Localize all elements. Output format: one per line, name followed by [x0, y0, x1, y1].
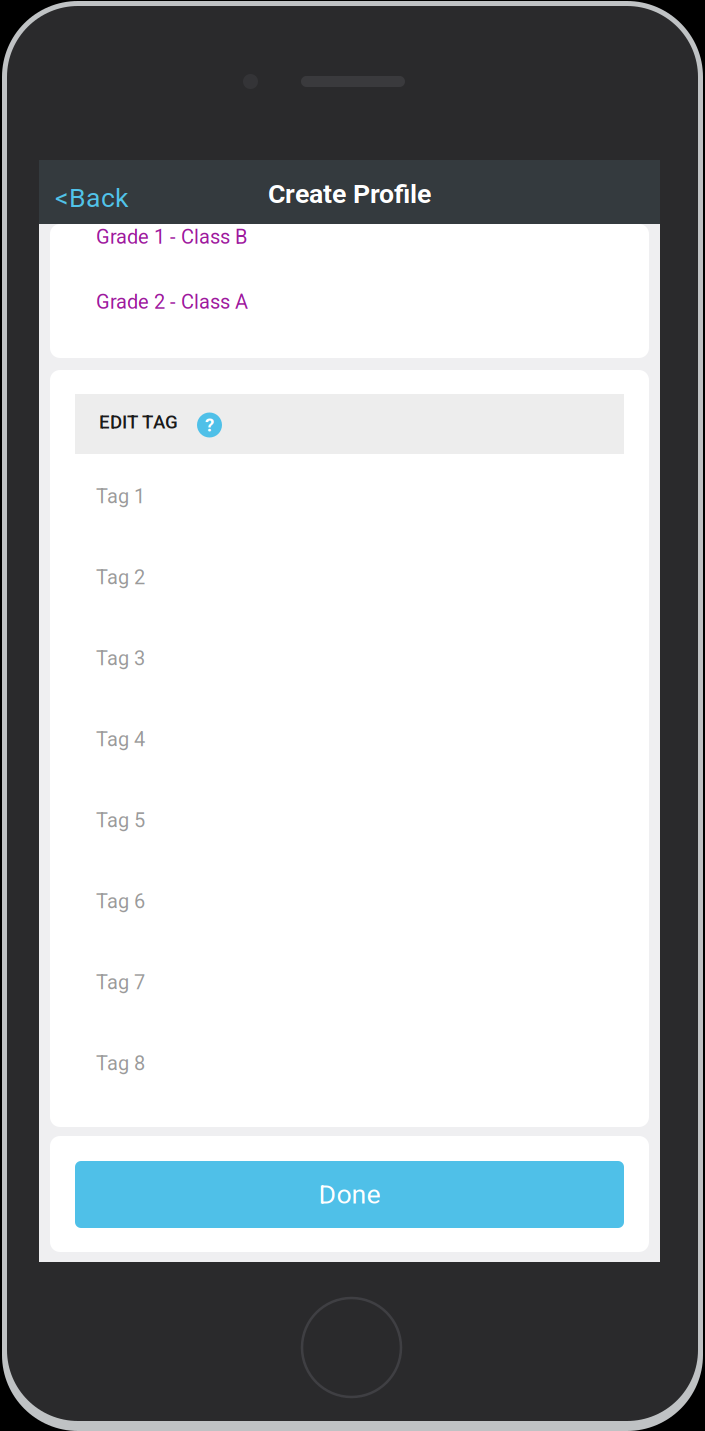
button[interactable]: Tag 4: [50, 699, 649, 780]
button[interactable]: Grade 1 - Class B: [50, 225, 649, 249]
staticText: Grade 1 - Class B: [96, 225, 247, 249]
staticText: EDIT TAG: [99, 411, 178, 433]
staticText: Done: [318, 1179, 380, 1210]
button[interactable]: Tag 7: [50, 942, 649, 1023]
button[interactable]: Tag 8: [50, 1023, 649, 1104]
button[interactable]: <Back: [39, 178, 189, 218]
button[interactable]: Tag 1: [50, 456, 649, 537]
staticText: ?: [205, 414, 214, 436]
staticText: <Back: [55, 182, 129, 214]
button[interactable]: Tag 2: [50, 537, 649, 618]
staticText: Tag 6: [96, 890, 145, 913]
staticText: Tag 8: [96, 1052, 145, 1075]
staticText: Tag 7: [96, 971, 145, 994]
button[interactable]: Grade 2 - Class A: [50, 290, 649, 314]
button[interactable]: Help about tags: [197, 412, 222, 437]
staticText: Create Profile: [268, 178, 431, 210]
button[interactable]: Done: [75, 1161, 624, 1228]
staticText: Tag 1: [96, 485, 145, 508]
staticText: Tag 5: [96, 809, 145, 832]
button[interactable]: Tag 3: [50, 618, 649, 699]
button[interactable]: Tag 5: [50, 780, 649, 861]
staticText: Grade 2 - Class A: [96, 290, 248, 314]
staticText: Tag 3: [96, 647, 145, 670]
button[interactable]: Tag 6: [50, 861, 649, 942]
staticText: Tag 4: [96, 728, 145, 751]
staticText: Tag 2: [96, 566, 145, 589]
